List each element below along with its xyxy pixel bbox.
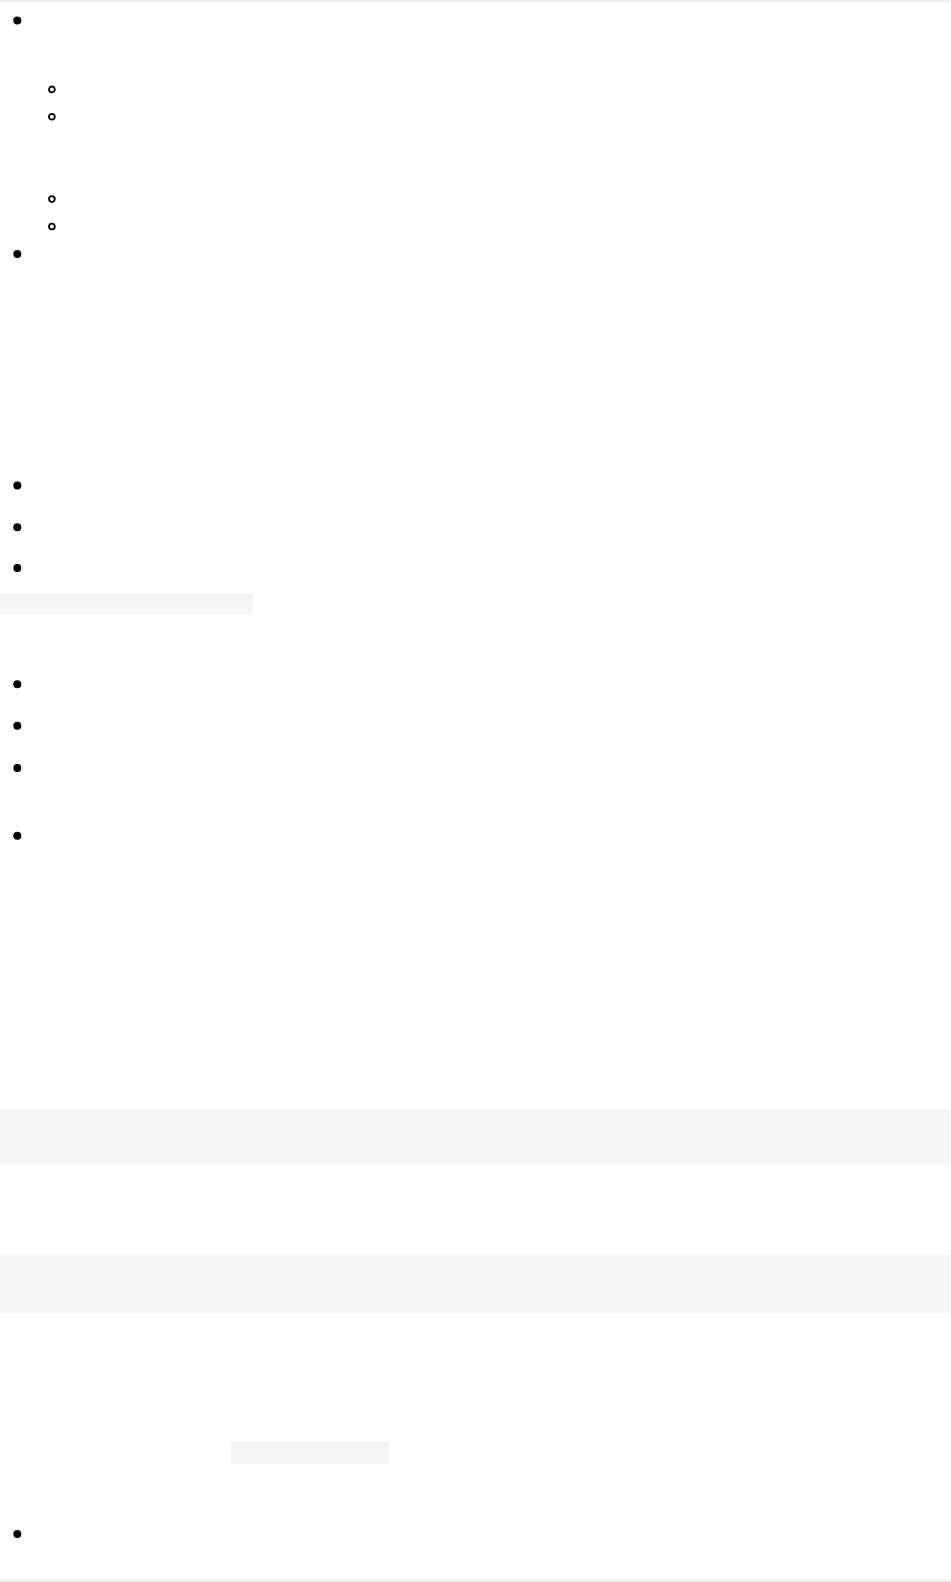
button[interactable]: List item ten [0, 1522, 951, 1582]
button[interactable]: List item two [0, 233, 951, 274]
button[interactable]: List item three [0, 464, 951, 505]
button[interactable]: List item eight [0, 754, 951, 808]
button[interactable]: Inline code [0, 1442, 951, 1464]
button[interactable]: List item one [0, 8, 951, 70]
button[interactable]: List item six [0, 671, 951, 712]
button[interactable]: Article top rule [0, 0, 951, 8]
button[interactable]: List item nine [0, 808, 951, 866]
button[interactable]: List item five [0, 546, 951, 585]
button[interactable]: Code snippet [0, 594, 951, 615]
button[interactable]: Nested item four [0, 206, 951, 233]
button[interactable]: List item four [0, 505, 951, 546]
button[interactable]: Nested item three [0, 179, 951, 206]
button[interactable]: List item seven [0, 712, 951, 754]
button[interactable]: Nested item one [0, 70, 951, 97]
button[interactable]: Nested item two [0, 97, 951, 124]
